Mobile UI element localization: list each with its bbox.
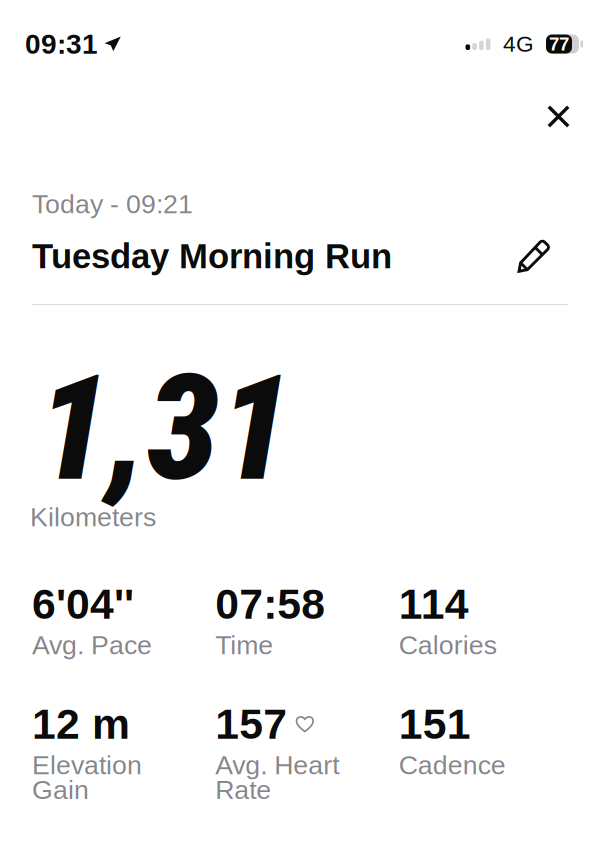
staticText: 07:58 — [215, 580, 325, 628]
staticText: 1,31 — [37, 344, 291, 514]
staticText: 114 — [399, 580, 469, 628]
staticText: Avg. Pace — [32, 630, 152, 660]
staticText: 12 m — [32, 700, 130, 748]
staticText: 157 — [215, 700, 287, 748]
staticText: Elevation Gain — [32, 750, 142, 805]
button[interactable]: Close — [533, 91, 584, 142]
staticText: Avg. Heart Rate — [215, 750, 339, 805]
staticText: Kilometers — [30, 502, 156, 532]
staticText: 77 — [549, 34, 569, 54]
staticText: 4G — [503, 31, 534, 57]
staticText: Time — [215, 630, 273, 660]
staticText: 6'04'' — [32, 580, 134, 628]
staticText: Tuesday Morning Run — [32, 237, 392, 275]
staticText: Today - 09:21 — [32, 189, 193, 219]
staticText: Cadence — [399, 750, 506, 780]
button[interactable]: Edit name — [517, 240, 568, 273]
staticText: Calories — [399, 630, 497, 660]
staticText: 151 — [399, 700, 471, 748]
staticText: 09:31 — [25, 28, 98, 60]
